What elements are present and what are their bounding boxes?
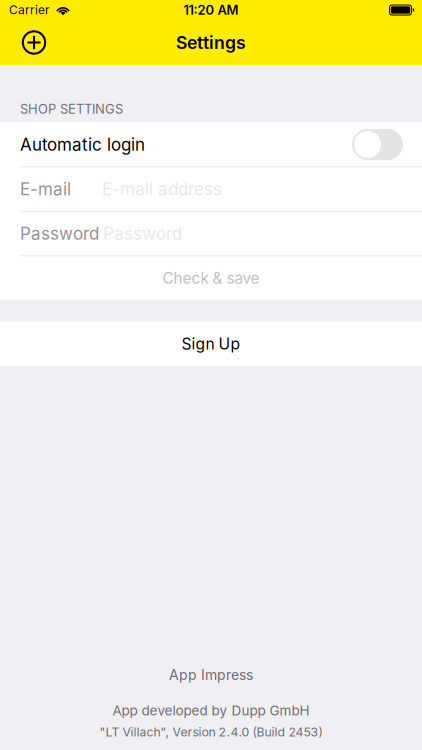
- staticText: "LT Villach", Version 2.4.0 (Build 2453): [99, 725, 322, 739]
- button[interactable]: Add: [0, 20, 75, 64]
- button[interactable]: Automatic login: [0, 123, 422, 166]
- button[interactable]: App Impress: [0, 662, 422, 688]
- staticText: SHOP SETTINGS: [20, 101, 123, 117]
- staticText: Password: [20, 223, 99, 244]
- staticText: E-mail address: [102, 179, 222, 199]
- staticText: Sign Up: [181, 334, 240, 353]
- staticText: Check & save: [162, 269, 259, 287]
- staticText: App Impress: [169, 666, 253, 683]
- button[interactable]: Check & save: [0, 256, 422, 300]
- staticText: App developed by Dupp GmbH: [112, 702, 309, 719]
- button[interactable]: Sign Up: [0, 321, 422, 366]
- staticText: E-mail: [20, 179, 71, 199]
- staticText: Carrier: [9, 3, 50, 17]
- staticText: Automatic login: [20, 134, 145, 155]
- staticText: 11:20 AM: [183, 2, 238, 18]
- staticText: Settings: [176, 32, 246, 53]
- staticText: Password: [103, 223, 182, 244]
